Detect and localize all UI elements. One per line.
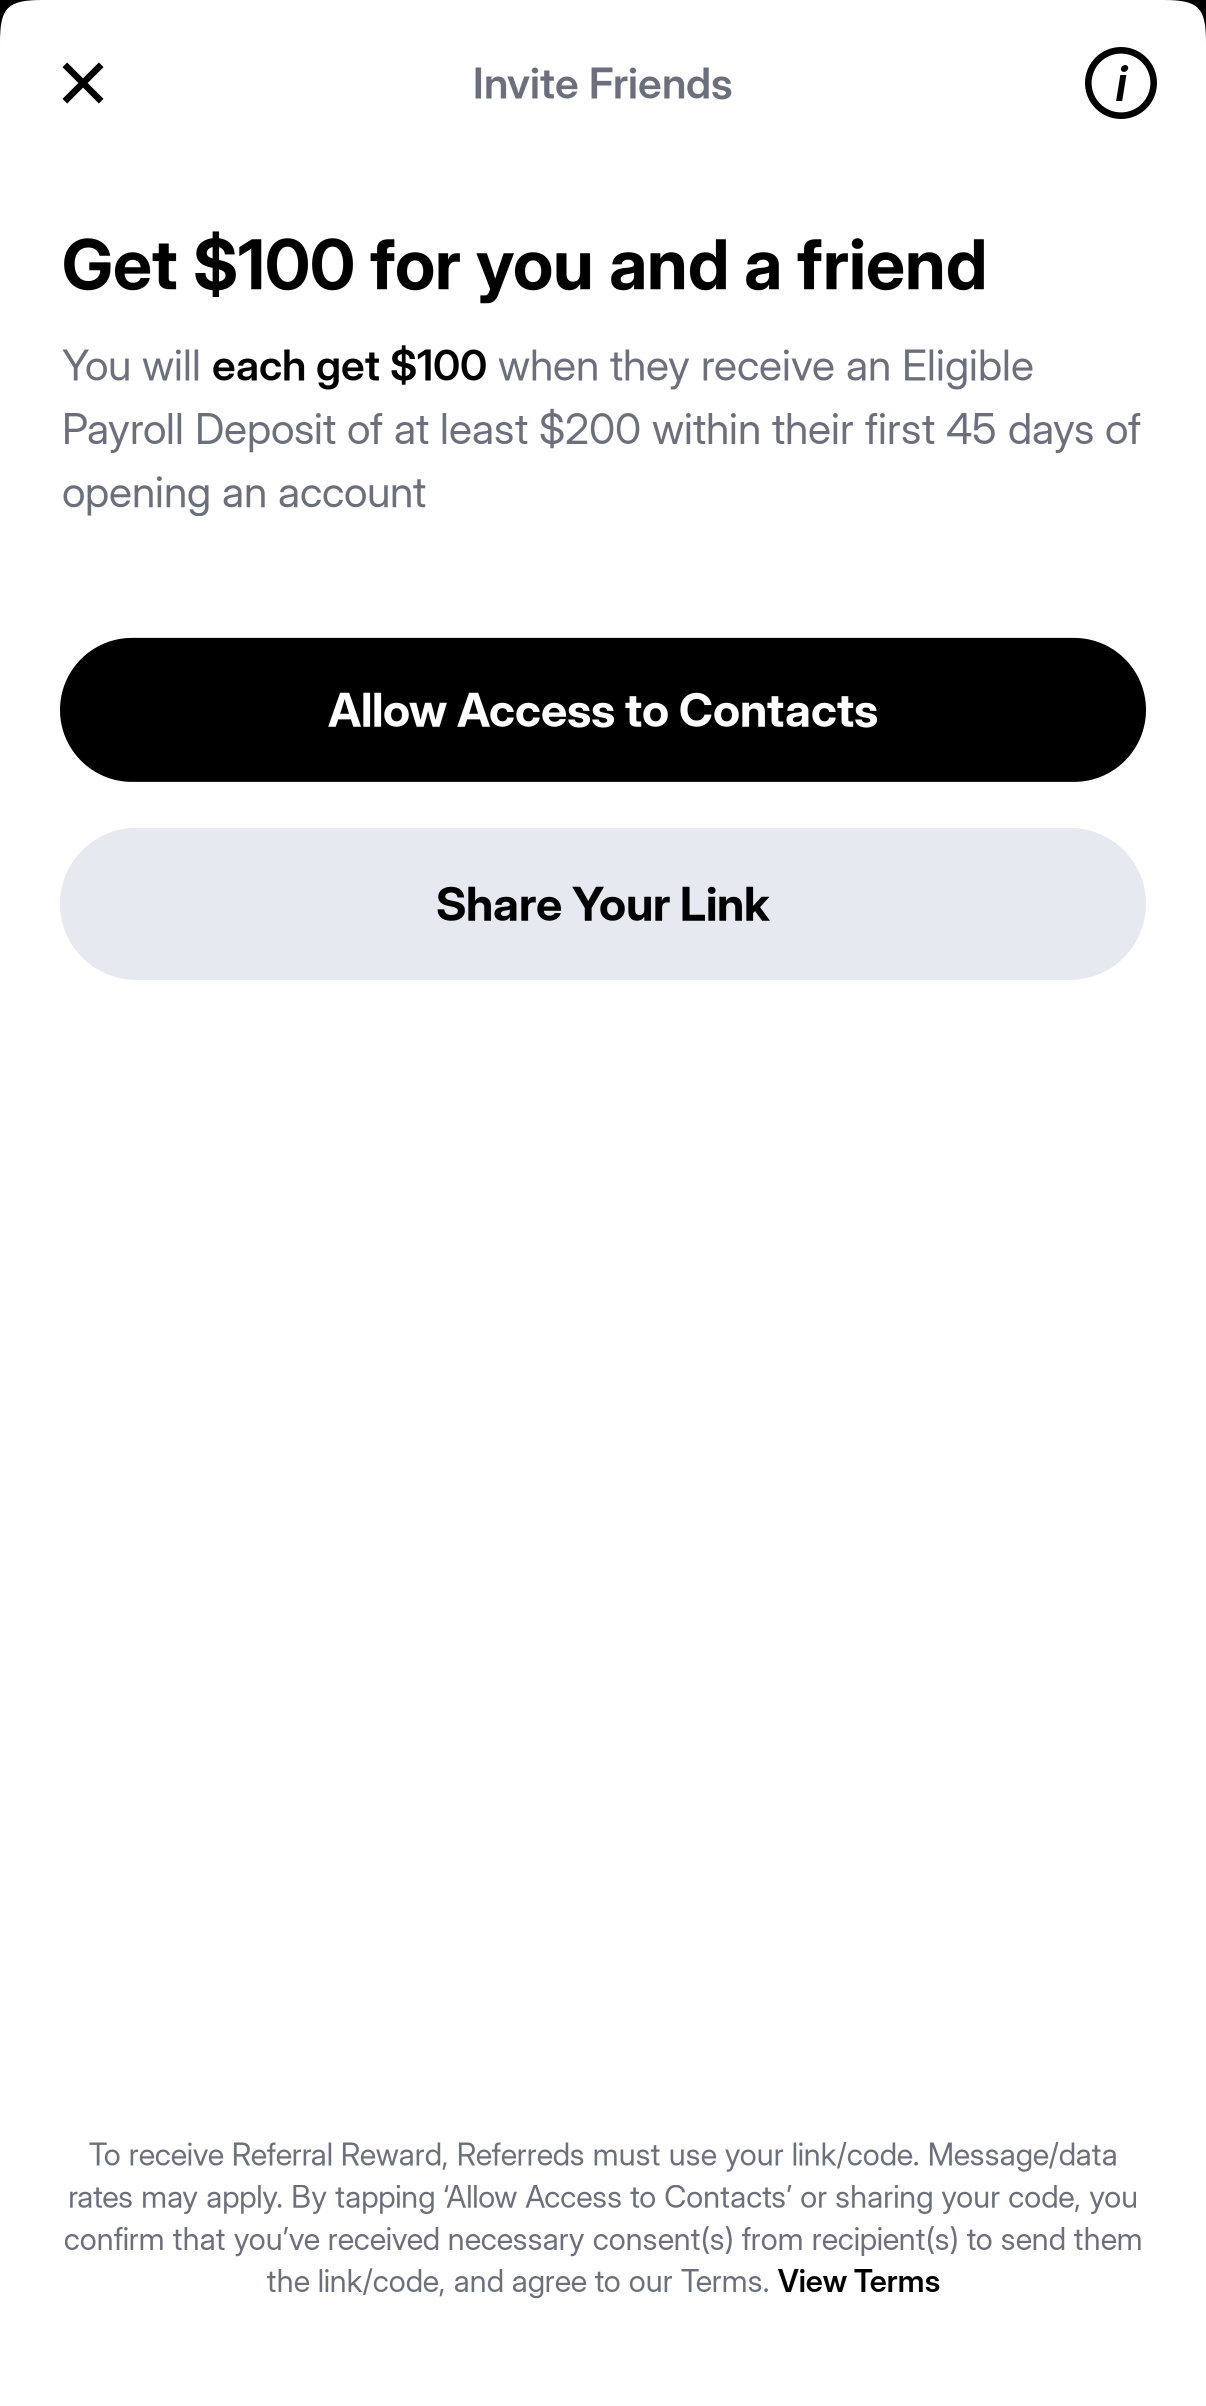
- button[interactable]: Allow Access to Contacts: [60, 638, 1146, 782]
- button[interactable]: Close: [28, 28, 138, 138]
- staticText: To receive Referral Reward, Referreds mu…: [63, 2136, 1142, 2299]
- button[interactable]: Share Your Link: [60, 828, 1146, 980]
- staticText: Share Your Link: [436, 876, 770, 932]
- staticText: Allow Access to Contacts: [328, 682, 878, 738]
- button[interactable]: Information: [1066, 28, 1176, 138]
- staticText: Get $100 for you and a friend: [62, 222, 987, 306]
- staticText: i: [1115, 53, 1126, 113]
- staticText: Invite Friends: [473, 57, 733, 109]
- button[interactable]: View Terms: [830, 2258, 996, 2298]
- staticText: You will each get $100 when they receive…: [62, 340, 1141, 517]
